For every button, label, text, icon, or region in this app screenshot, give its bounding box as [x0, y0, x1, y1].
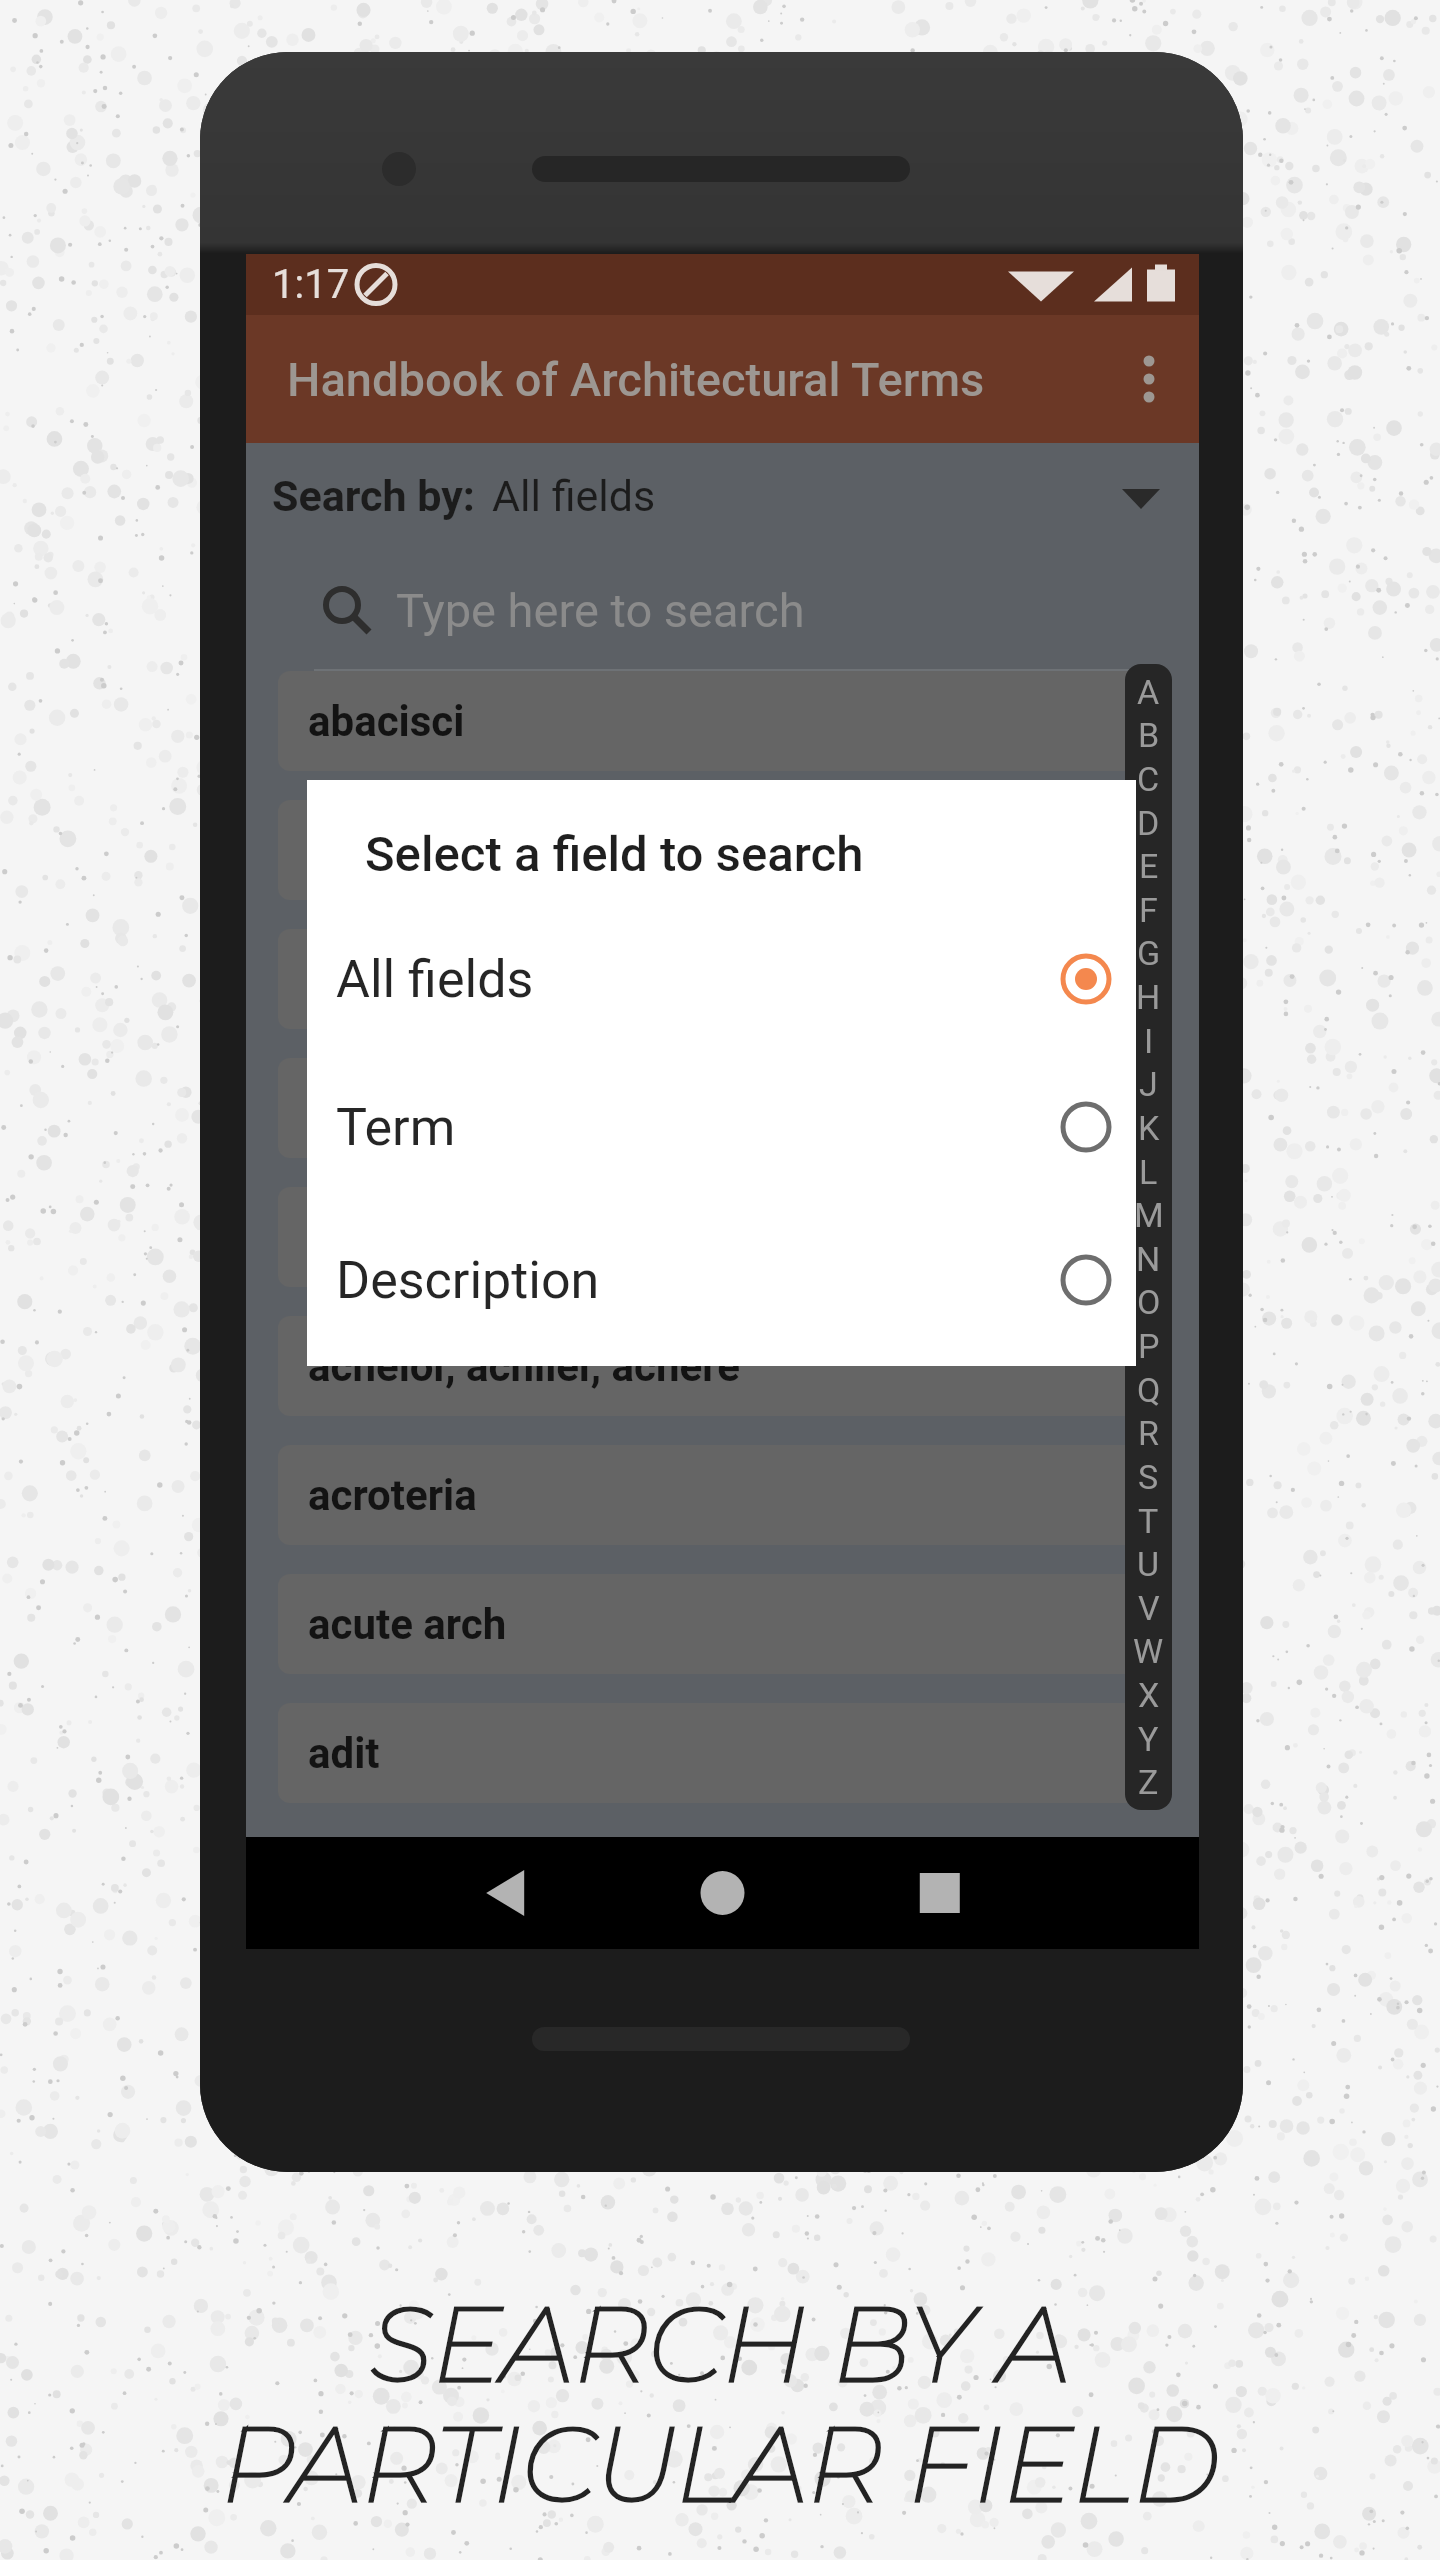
staticText: abacisci [308, 697, 465, 746]
button[interactable]: abamurus [278, 1058, 1145, 1158]
staticText: D [1137, 803, 1160, 843]
staticText: adit [308, 1729, 380, 1778]
staticText: SEARCH BY A [370, 2280, 1071, 2407]
staticText: Z [1138, 1762, 1159, 1802]
staticText: Handbook of Architectural Terms [287, 352, 985, 407]
staticText: Term [336, 1097, 456, 1158]
staticText: P [1138, 1326, 1160, 1366]
button[interactable]: Description [307, 1226, 1136, 1334]
staticText: M [1134, 1195, 1164, 1235]
staticText: acute arch [308, 1600, 507, 1649]
staticText: Type here to search [396, 583, 805, 638]
staticText: achelor, achiler, achere [308, 1342, 740, 1391]
staticText: C [1137, 759, 1160, 799]
button[interactable]: achelor, achiler, achere [278, 1316, 1145, 1416]
staticText: 1:17 [272, 261, 350, 308]
staticText: L [1139, 1152, 1158, 1192]
staticText: O [1137, 1282, 1161, 1322]
button[interactable]: Term [307, 1073, 1136, 1181]
staticText: abacus [308, 955, 444, 1004]
staticText: A [1137, 672, 1160, 712]
button[interactable]: abacisci [278, 671, 1145, 771]
staticText: acroteria [308, 1471, 477, 1520]
staticText: abate [308, 1213, 414, 1262]
staticText: Select a field to search [365, 826, 864, 883]
button[interactable]: abaciscus [278, 800, 1145, 900]
staticText: T [1138, 1501, 1159, 1541]
staticText: U [1137, 1544, 1160, 1584]
staticText: All fields [492, 471, 656, 521]
staticText: F [1139, 890, 1158, 930]
staticText: S [1138, 1457, 1159, 1497]
staticText: Y [1138, 1719, 1159, 1759]
staticText: G [1137, 933, 1161, 973]
button[interactable]: acroteria [278, 1445, 1145, 1545]
staticText: E [1139, 846, 1159, 886]
staticText: H [1136, 977, 1161, 1017]
staticText: abaciscus [308, 826, 499, 875]
staticText: abamurus [308, 1084, 498, 1133]
staticText: Q [1137, 1370, 1161, 1410]
staticText: PARTICULAR FIELD [221, 2400, 1219, 2527]
staticText: V [1138, 1588, 1160, 1628]
staticText: All fields [336, 949, 534, 1010]
staticText: X [1138, 1675, 1160, 1715]
button[interactable]: Search by: [246, 443, 1199, 549]
staticText: N [1136, 1239, 1161, 1279]
staticText: I [1144, 1021, 1154, 1061]
button[interactable]: abacus [278, 929, 1145, 1029]
button[interactable]: All fields [307, 925, 1136, 1033]
staticText: R [1138, 1413, 1159, 1453]
button[interactable]: adit [278, 1703, 1145, 1803]
button[interactable]: More options [1099, 329, 1199, 429]
staticText: Description [336, 1250, 600, 1311]
staticText: K [1138, 1108, 1160, 1148]
button[interactable]: acute arch [278, 1574, 1145, 1674]
staticText: W [1133, 1631, 1164, 1671]
staticText: Search by: [272, 471, 475, 521]
staticText: B [1138, 715, 1160, 755]
staticText: J [1139, 1064, 1158, 1104]
button[interactable]: Alphabet index [1125, 664, 1172, 1810]
button[interactable]: abate [278, 1187, 1145, 1287]
